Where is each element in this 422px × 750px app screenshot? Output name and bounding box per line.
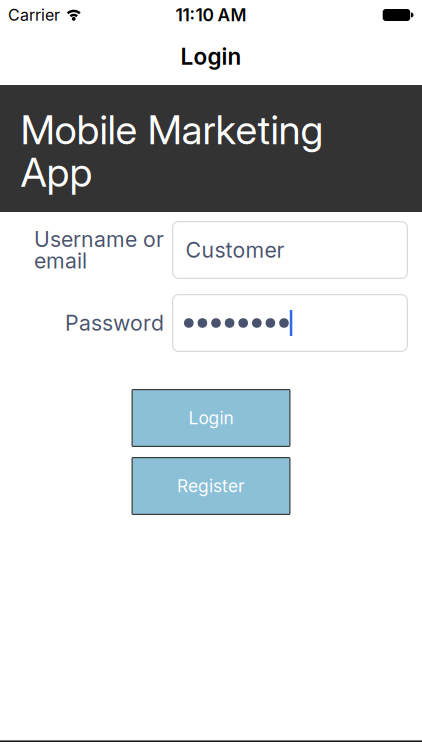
staticText: Password bbox=[65, 310, 164, 336]
staticText: Username or bbox=[34, 226, 164, 252]
button[interactable]: Password bbox=[172, 294, 408, 352]
staticText: Register bbox=[177, 475, 245, 496]
staticText: Carrier bbox=[8, 5, 60, 25]
staticText: Mobile Marketing App bbox=[20, 108, 323, 193]
staticText: email bbox=[34, 248, 87, 274]
button[interactable]: Login bbox=[131, 389, 290, 447]
staticText: 11:10 AM bbox=[175, 4, 246, 25]
staticText: Login bbox=[180, 43, 241, 70]
staticText: Login bbox=[188, 407, 233, 428]
staticText: Customer bbox=[185, 237, 284, 263]
button[interactable]: Username or email bbox=[172, 221, 408, 279]
button[interactable]: Register bbox=[131, 457, 290, 515]
